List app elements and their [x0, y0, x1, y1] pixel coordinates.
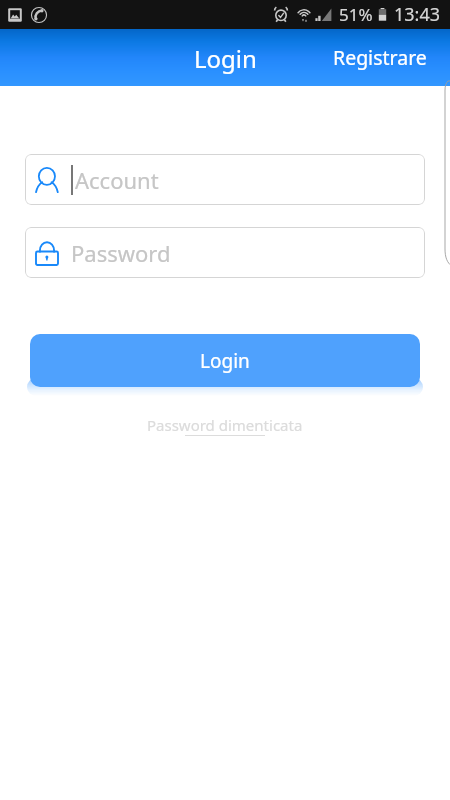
button[interactable]: Account — [25, 154, 425, 205]
other: Battery — [377, 6, 388, 23]
staticText: Login — [200, 348, 250, 374]
button[interactable]: Password dimenticata — [137, 410, 313, 440]
staticText: Registrare — [333, 44, 427, 71]
staticText: Login — [194, 42, 257, 75]
other: Wi-Fi — [297, 6, 311, 23]
other: Alarm — [274, 6, 288, 23]
staticText: 51% — [339, 3, 373, 26]
staticText: Account — [75, 165, 159, 195]
other: Call — [30, 6, 48, 24]
staticText: 13:43 — [394, 2, 441, 27]
button[interactable]: Registrare — [317, 34, 450, 81]
button[interactable]: Login — [30, 334, 420, 387]
staticText: Password — [71, 238, 171, 268]
other: Signal — [315, 7, 332, 23]
button[interactable]: Password — [25, 227, 425, 278]
staticText: Password dimenticata — [147, 415, 303, 435]
other: Screenshot — [7, 7, 23, 23]
